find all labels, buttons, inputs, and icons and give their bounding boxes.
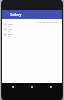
staticText: Pics — [8, 32, 13, 35]
button[interactable]: Pics — [2, 27, 62, 32]
button[interactable]: Cam — [2, 22, 62, 27]
staticText: 3 items available — [38, 20, 57, 23]
staticText: Gallery — [10, 12, 22, 17]
staticText: 24 — [8, 25, 11, 27]
button[interactable]: Pics — [2, 32, 62, 37]
staticText: 24 — [8, 30, 11, 32]
staticText: Pics — [8, 27, 13, 30]
staticText: Cam — [8, 22, 14, 25]
button[interactable]: Gallery — [2, 10, 62, 19]
staticText: 24 — [8, 35, 11, 37]
